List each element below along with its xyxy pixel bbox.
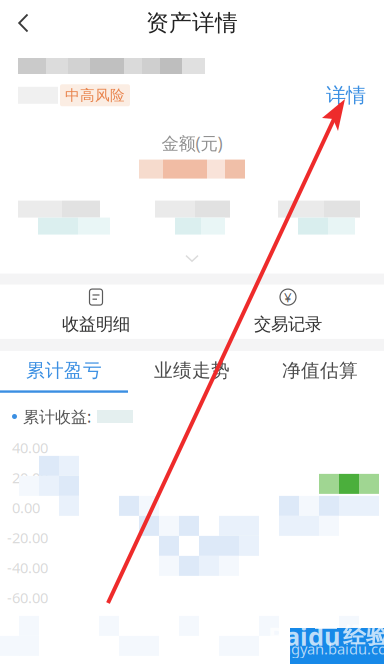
staticText: 金额(元) (161, 132, 222, 155)
staticText: 详情 (326, 83, 366, 108)
staticText: 资产详情 (146, 9, 238, 37)
staticText: 累计盈亏 (26, 359, 102, 382)
staticText: jingyan.baidu.com (274, 639, 384, 658)
staticText: Baidu (268, 619, 340, 653)
staticText: 20.00 (12, 468, 48, 487)
staticText: 0.00 (12, 498, 40, 517)
staticText: -40.00 (7, 558, 48, 577)
staticText: 中高风险 (65, 86, 125, 104)
staticText: -20.00 (7, 528, 48, 547)
staticText: 收益明细 (62, 314, 130, 335)
staticText: 40.00 (12, 438, 48, 457)
button[interactable]: 累计盈亏 (0, 351, 128, 393)
button[interactable]: 净值估算 (256, 351, 384, 393)
staticText: ¥ (284, 288, 292, 306)
button[interactable]: 业绩走势 (128, 351, 256, 393)
button[interactable]: Back (0, 3, 43, 42)
staticText: 累计收益: (23, 406, 91, 427)
button[interactable]: ¥ (192, 285, 384, 339)
button[interactable]: 收益明细 (0, 285, 192, 339)
button[interactable]: 详情 (308, 78, 384, 113)
staticText: 经验 (343, 622, 384, 650)
staticText: 交易记录 (254, 314, 322, 335)
staticText: 业绩走势 (154, 359, 230, 382)
staticText: -60.00 (7, 588, 48, 607)
staticText: 净值估算 (282, 359, 358, 382)
